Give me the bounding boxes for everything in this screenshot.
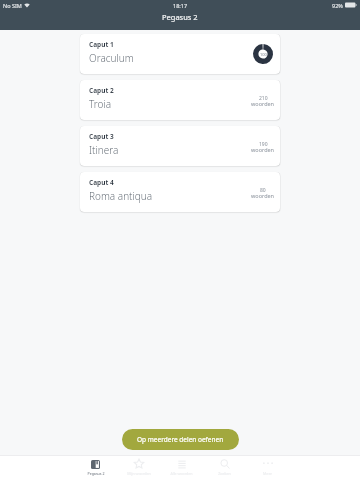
staticText: 18:17 [173, 2, 188, 9]
staticText: Caput 4 [89, 178, 114, 187]
staticText: No SIM [3, 2, 22, 9]
staticText: Itinera [89, 143, 119, 157]
staticText: Troia [89, 97, 112, 111]
staticText: woorden [251, 146, 275, 153]
staticText: Caput 1 [89, 40, 114, 49]
button[interactable]: Op meerdere delen oefenen [122, 429, 239, 450]
staticText: 100 [260, 52, 267, 57]
staticText: Zoeken [218, 471, 231, 476]
button[interactable]: Pegasus 2 [74, 456, 117, 479]
staticText: woorden [251, 192, 275, 199]
staticText: 190 [259, 141, 268, 148]
staticText: 80 [260, 187, 266, 194]
button[interactable]: Caput 2 [80, 80, 280, 120]
other: Voortgang 100 procent [253, 44, 273, 64]
staticText: Oraculum [89, 51, 134, 65]
staticText: 210 [259, 95, 268, 102]
staticText: Roma antiqua [89, 189, 153, 203]
staticText: Pegasus 2 [87, 471, 105, 476]
staticText: Alle woorden [170, 471, 193, 476]
staticText: Caput 2 [89, 86, 114, 95]
staticText: Caput 3 [89, 132, 114, 141]
button[interactable]: Caput 4 [80, 172, 280, 212]
button[interactable]: Caput 1 [80, 34, 280, 74]
staticText: Op meerdere delen oefenen [137, 435, 224, 444]
staticText: Mijn woorden [127, 471, 151, 476]
button[interactable]: Caput 3 [80, 126, 280, 166]
staticText: Meer [263, 471, 272, 476]
staticText: Pegasus 2 [162, 12, 198, 22]
button[interactable]: Mijn woorden [117, 456, 160, 479]
button[interactable]: Alle woorden [160, 456, 203, 479]
staticText: woorden [251, 100, 275, 107]
staticText: 92% [332, 2, 343, 9]
